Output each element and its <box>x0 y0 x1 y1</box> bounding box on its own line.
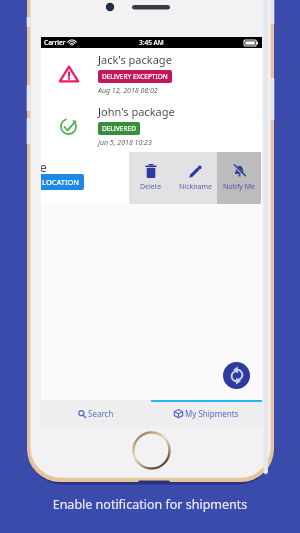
staticText: Search <box>88 408 114 419</box>
button[interactable]: My Shipments <box>151 400 262 426</box>
staticText: Jack's package <box>98 52 172 67</box>
staticText: T LOCATION <box>41 177 80 187</box>
staticText: Notify Me <box>223 182 255 192</box>
button[interactable]: Notify Me <box>217 152 261 204</box>
staticText: Jun 5, 2018 10:23 <box>98 138 152 148</box>
staticText: Delete <box>140 182 162 192</box>
staticText: Aug 12, 2018 08:02 <box>98 86 158 96</box>
button[interactable]: John's package <box>41 100 262 152</box>
staticText: My Shipments <box>185 408 239 419</box>
button[interactable]: Delete <box>129 152 173 204</box>
button[interactable]: Nickname <box>173 152 217 204</box>
button[interactable]: Jack's package <box>41 48 262 100</box>
staticText: DELIVERY EXCEPTION <box>102 72 168 81</box>
staticText: John's package <box>98 104 175 119</box>
staticText: Enable notification for shipments <box>0 496 300 513</box>
staticText: 3:45 AM <box>139 38 164 47</box>
staticText: Jane's package <box>41 159 47 176</box>
staticText: Carrier <box>44 38 66 47</box>
staticText: Nickname <box>179 182 212 192</box>
button[interactable]: Refresh <box>223 362 250 389</box>
button[interactable]: Search <box>41 400 151 426</box>
staticText: DELIVERED <box>102 124 136 133</box>
